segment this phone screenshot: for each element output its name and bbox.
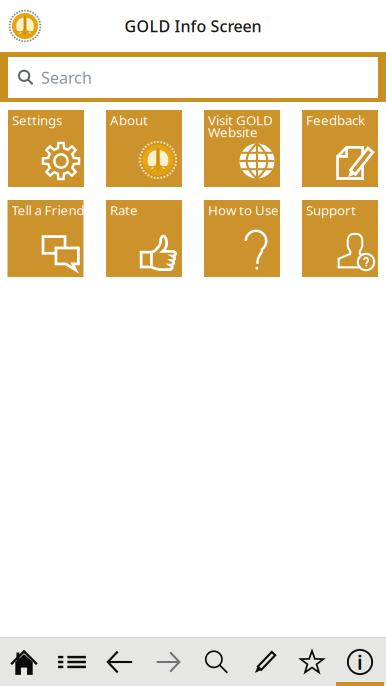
button[interactable]: Tell a Friend <box>8 200 84 277</box>
staticText: Rate <box>110 201 138 219</box>
staticText: Support <box>306 201 356 219</box>
button[interactable]: Visit GOLD <box>204 110 280 187</box>
button[interactable]: Notes <box>240 638 288 686</box>
button[interactable]: Bookmarks <box>288 638 336 686</box>
button[interactable]: Settings <box>8 110 84 187</box>
staticText: i <box>357 649 363 675</box>
staticText: How to Use <box>208 201 279 219</box>
staticText: Website <box>208 123 258 141</box>
button[interactable]: Search <box>192 638 240 686</box>
staticText: About <box>110 111 148 129</box>
staticText: Settings <box>12 111 62 129</box>
button[interactable]: Back <box>96 638 144 686</box>
staticText: Feedback <box>306 111 365 129</box>
staticText: Search <box>41 67 92 88</box>
button[interactable]: Rate <box>106 200 182 277</box>
button[interactable]: How to Use <box>204 200 280 277</box>
staticText: Visit GOLD <box>208 111 273 129</box>
button[interactable]: Forward <box>144 638 192 686</box>
staticText: GOLD Info Screen <box>124 15 261 37</box>
button[interactable]: Feedback <box>302 110 378 187</box>
button[interactable]: Home <box>0 638 48 686</box>
button[interactable]: About <box>106 110 182 187</box>
button[interactable]: Contents <box>48 638 96 686</box>
button[interactable]: Support <box>302 200 378 277</box>
button[interactable]: Info <box>336 638 384 686</box>
staticText: Tell a Friend <box>11 201 84 219</box>
